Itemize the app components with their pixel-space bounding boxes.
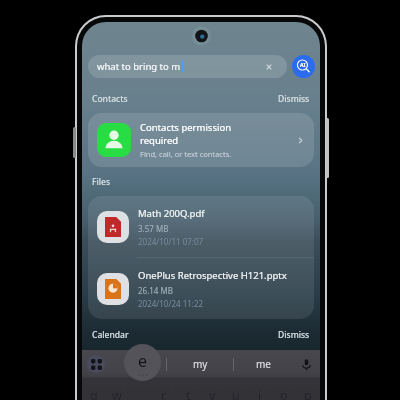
button[interactable]: Voice input [292, 350, 320, 378]
staticText: AI [300, 62, 306, 69]
staticText: Dismiss [278, 329, 310, 341]
staticText: Dismiss [278, 93, 310, 105]
staticText: me [256, 357, 271, 371]
staticText: t [186, 387, 191, 400]
staticText: Math 200Q.pdf [138, 207, 205, 220]
staticText: w [112, 387, 122, 400]
button[interactable]: Clear [263, 61, 275, 73]
staticText: u [232, 387, 240, 400]
button[interactable]: my [167, 350, 233, 378]
button[interactable]: Math 200Q.pdf [88, 196, 314, 257]
staticText: Files [92, 176, 111, 188]
staticText: Find, call, or text contacts. [140, 149, 232, 159]
staticText: Contacts permission [140, 121, 232, 134]
staticText: r [161, 387, 167, 400]
button[interactable]: AI search [292, 55, 315, 78]
staticText: what to bring to m [97, 60, 181, 73]
button[interactable]: OnePlus Retrospective H121.pptx [88, 258, 314, 319]
button[interactable]: e [124, 344, 161, 381]
button[interactable]: what to bring to m [88, 55, 287, 78]
staticText: y [209, 387, 216, 400]
staticText: 26.14 MB [138, 285, 173, 296]
staticText: o [280, 387, 288, 400]
button[interactable]: Dismiss [278, 93, 310, 105]
button[interactable]: Contacts permission [88, 113, 314, 167]
staticText: OnePlus Retrospective H121.pptx [138, 269, 287, 282]
staticText: p [304, 387, 312, 400]
button[interactable] [109, 350, 166, 378]
staticText: e [138, 350, 148, 372]
staticText: 2024/10/24 11:22 [138, 298, 204, 309]
staticText: my [193, 357, 208, 371]
button[interactable]: Dismiss [278, 329, 310, 341]
staticText: q [90, 387, 98, 400]
staticText: 2024/10/11 07:07 [138, 236, 204, 247]
staticText: i [258, 387, 262, 400]
staticText: required [140, 134, 179, 147]
button[interactable]: me [234, 350, 292, 378]
staticText: Calendar [92, 329, 129, 341]
button[interactable]: Keyboard options [82, 350, 109, 378]
staticText: 3.57 MB [138, 223, 169, 234]
button[interactable] [128, 378, 152, 400]
staticText: Contacts [92, 93, 128, 105]
